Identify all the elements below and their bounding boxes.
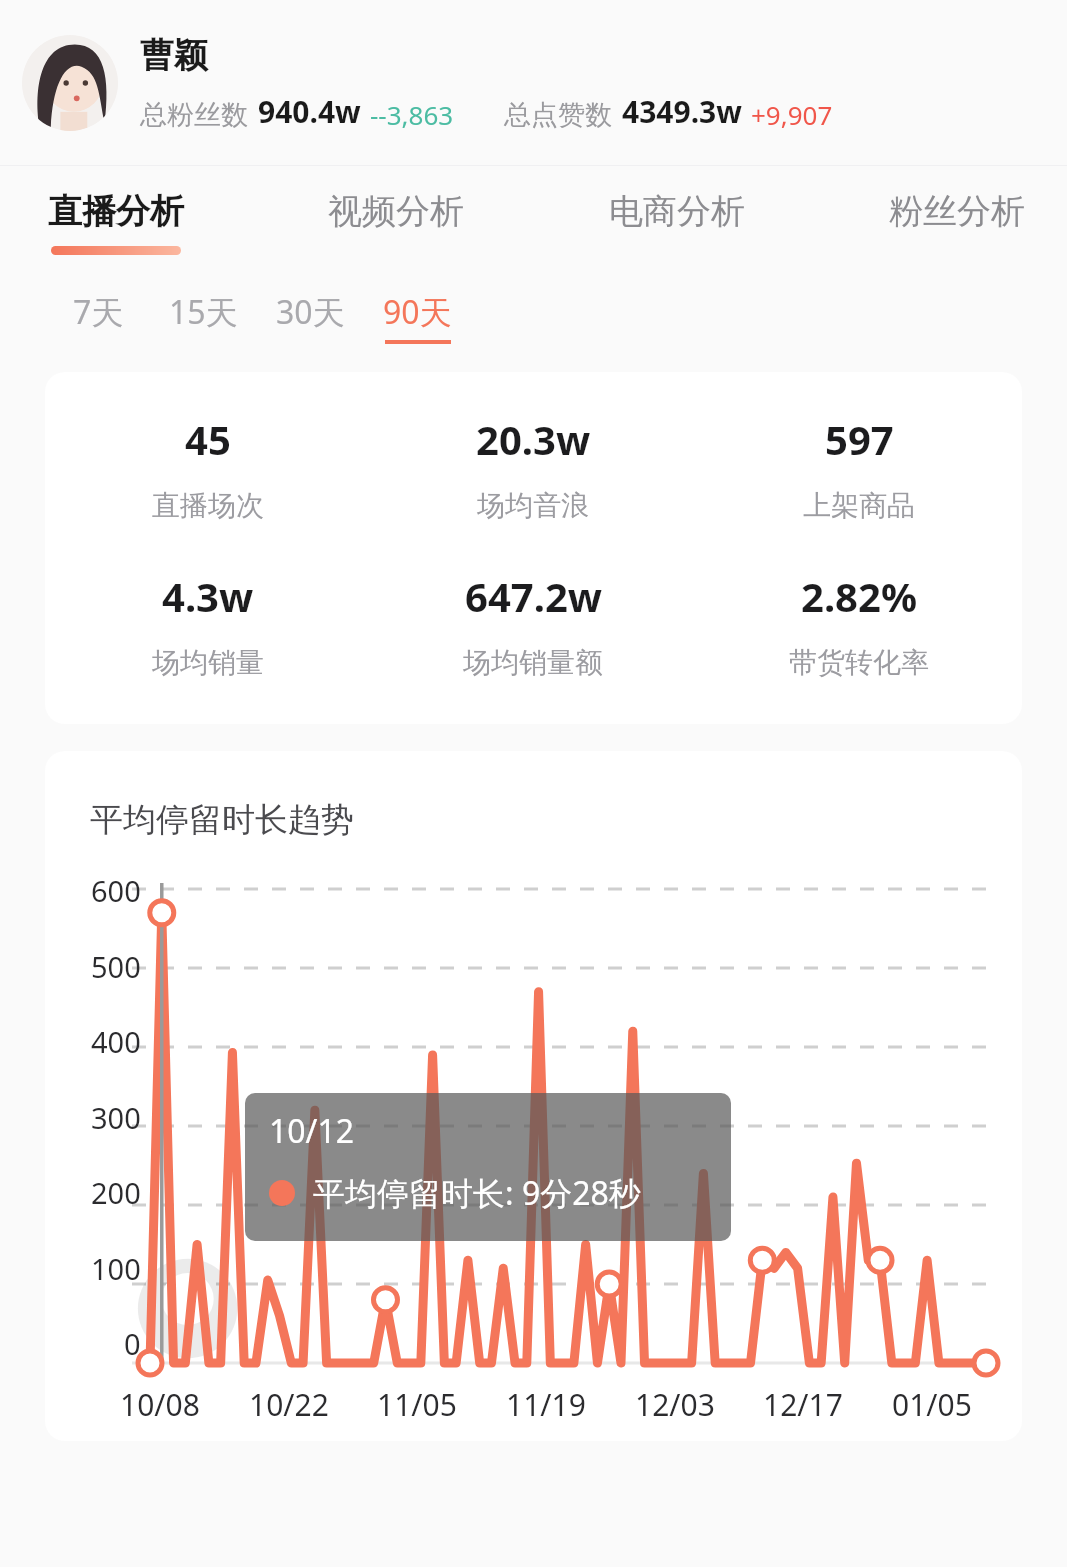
staticText: 直播分析	[48, 190, 184, 233]
staticText: --3,863	[370, 97, 454, 132]
button[interactable]: 10/12	[245, 1093, 731, 1241]
staticText: 15天	[169, 290, 238, 334]
button[interactable]: 20.3w	[370, 412, 696, 523]
staticText: 11/19	[506, 1384, 586, 1425]
staticText: 2.82%	[801, 569, 917, 623]
staticText: 场均销量额	[463, 645, 603, 680]
staticText: 600	[91, 871, 141, 910]
button[interactable]: 30天	[257, 286, 364, 348]
staticText: 0	[124, 1324, 141, 1363]
staticText: 647.2w	[465, 569, 602, 623]
staticText: 粉丝分析	[889, 190, 1025, 233]
staticText: 10/08	[120, 1384, 200, 1425]
button[interactable]: Profile avatar	[22, 35, 118, 131]
staticText: 45	[185, 412, 231, 466]
staticText: 4349.3w	[622, 91, 742, 132]
staticText: 直播场次	[152, 488, 264, 523]
staticText: 曹颖	[140, 34, 208, 77]
button[interactable]: 45	[45, 372, 1022, 724]
button[interactable]: 597	[696, 412, 1022, 523]
staticText: 10/12	[269, 1109, 355, 1153]
staticText: 总点赞数	[504, 98, 612, 132]
staticText: 400	[91, 1022, 141, 1061]
button[interactable]: 90天	[364, 286, 471, 348]
staticText: 01/05	[892, 1384, 972, 1425]
staticText: 300	[91, 1098, 141, 1137]
staticText: 10/22	[249, 1384, 329, 1425]
button[interactable]: 电商分析	[609, 166, 745, 263]
button[interactable]: 视频分析	[328, 166, 464, 263]
button[interactable]: 4.3w	[45, 569, 370, 680]
staticText: 30天	[276, 290, 345, 334]
staticText: 11/05	[377, 1384, 457, 1425]
staticText: 500	[91, 947, 141, 986]
staticText: 100	[91, 1249, 141, 1288]
button[interactable]: 45	[45, 412, 370, 523]
staticText: 平均停留时长: 9分28秒	[313, 1171, 641, 1215]
staticText: +9,907	[751, 97, 833, 132]
button[interactable]: 总点赞数	[504, 91, 833, 132]
button[interactable]: 647.2w	[370, 569, 696, 680]
staticText: 4.3w	[162, 569, 254, 623]
staticText: 597	[825, 412, 894, 466]
button[interactable]: 粉丝分析	[889, 166, 1025, 263]
staticText: 场均销量	[152, 645, 264, 680]
staticText: 场均音浪	[477, 488, 589, 523]
staticText: 视频分析	[328, 190, 464, 233]
button[interactable]: 15天	[150, 286, 257, 348]
staticText: 940.4w	[258, 91, 361, 132]
staticText: 上架商品	[803, 488, 915, 523]
staticText: 12/17	[763, 1384, 843, 1425]
staticText: 7天	[73, 290, 124, 334]
button[interactable]: 7天	[46, 286, 150, 348]
staticText: 12/03	[635, 1384, 715, 1425]
staticText: 带货转化率	[789, 645, 929, 680]
staticText: 20.3w	[476, 412, 591, 466]
button[interactable]: 2.82%	[696, 569, 1022, 680]
staticText: 200	[91, 1173, 141, 1212]
button[interactable]: 直播分析	[48, 166, 184, 263]
staticText: 总粉丝数	[140, 98, 248, 132]
staticText: 电商分析	[609, 190, 745, 233]
staticText: 平均停留时长趋势	[90, 799, 354, 841]
staticText: 90天	[383, 290, 452, 334]
button[interactable]: 平均停留时长趋势	[45, 751, 1022, 1441]
button[interactable]: 总粉丝数	[140, 91, 454, 132]
